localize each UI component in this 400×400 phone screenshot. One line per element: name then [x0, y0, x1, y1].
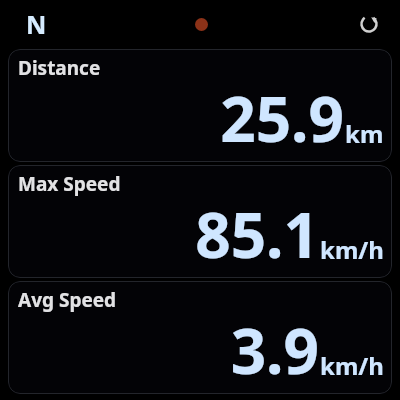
button[interactable]: N [22, 5, 51, 43]
staticText: N [26, 7, 47, 41]
other: Recording [195, 18, 208, 31]
staticText: km [345, 117, 384, 150]
staticText: 25.9 [220, 76, 344, 160]
staticText: Max Speed [18, 171, 121, 197]
button[interactable]: Refresh [352, 7, 386, 41]
button[interactable]: Max Speed [8, 165, 392, 278]
staticText: 3.9 [230, 308, 319, 392]
staticText: km/h [320, 349, 384, 382]
button[interactable]: Distance [8, 49, 392, 162]
staticText: km/h [320, 233, 384, 266]
staticText: Avg Speed [18, 287, 117, 313]
button[interactable]: Avg Speed [8, 281, 392, 394]
staticText: 85.1 [195, 192, 319, 276]
staticText: Distance [18, 55, 101, 81]
